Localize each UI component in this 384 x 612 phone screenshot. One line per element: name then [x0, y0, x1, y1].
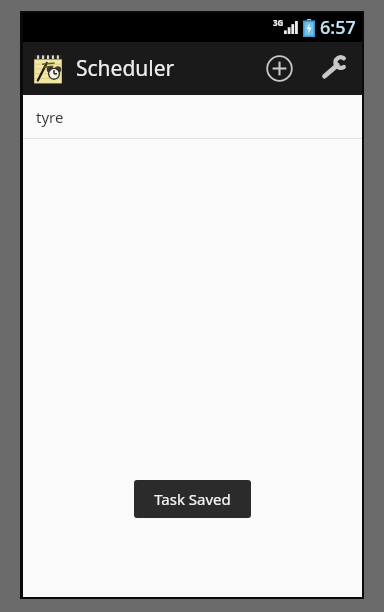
staticText: 6:57 [320, 15, 356, 40]
button[interactable] [31, 52, 65, 86]
staticText: tyre [36, 107, 64, 127]
button[interactable]: tyre [23, 95, 362, 139]
staticText: 3G [273, 17, 284, 28]
staticText: Scheduler [76, 54, 175, 83]
button[interactable]: Settings [306, 42, 362, 95]
button[interactable]: Add task [252, 42, 306, 95]
staticText: Task Saved [154, 489, 231, 509]
button[interactable]: Task Saved [134, 480, 251, 518]
